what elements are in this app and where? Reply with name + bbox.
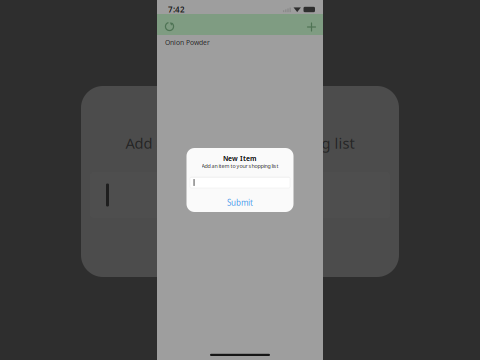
button[interactable]: Refresh (164, 12, 186, 37)
button[interactable]: Onion Powder (157, 35, 323, 50)
button[interactable]: Add item (295, 11, 317, 37)
staticText: Add an item to your shopping list (125, 133, 354, 153)
staticText: Add an item to your shopping list (201, 162, 278, 170)
staticText: Onion Powder (165, 38, 210, 47)
staticText: Submit (227, 197, 253, 208)
staticText: 7:42 (168, 4, 185, 15)
staticText: New Item (223, 154, 257, 163)
button[interactable]: Submit (186, 197, 293, 208)
